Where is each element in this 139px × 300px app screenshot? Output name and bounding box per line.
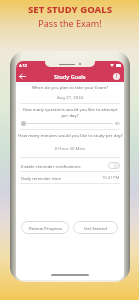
- staticText: 0 Hour 30 Mins: [18, 145, 122, 151]
- staticText: When do you plan to take your Exam?: [18, 84, 122, 90]
- staticText: Pass the Exam!: [38, 17, 102, 29]
- staticText: How many minutes would you like to study…: [18, 132, 123, 138]
- button[interactable]: Daily reminder time: [16, 172, 124, 183]
- staticText: Get Started: [84, 225, 107, 231]
- staticText: How many questions would you like to att…: [18, 106, 122, 118]
- staticText: Study Goals: [54, 73, 86, 80]
- staticText: 4:12: [19, 63, 27, 68]
- staticText: Daily reminder time: [21, 175, 62, 181]
- button[interactable]: Review Progress: [21, 221, 69, 234]
- button[interactable]: Enable reminder notifications: [16, 160, 124, 171]
- staticText: 90: [115, 121, 120, 126]
- button[interactable]: Help: [112, 72, 121, 81]
- staticText: !: [116, 73, 118, 80]
- button[interactable]: Get Started: [73, 221, 118, 234]
- staticText: Enable reminder notifications: [21, 163, 81, 169]
- staticText: Review Progress: [29, 225, 62, 231]
- staticText: SET STUDY GOALS: [28, 3, 112, 16]
- button[interactable]: Back: [16, 70, 28, 82]
- staticText: Aug 27, 2024: [18, 94, 122, 100]
- staticText: 10:41 PM: [102, 175, 120, 180]
